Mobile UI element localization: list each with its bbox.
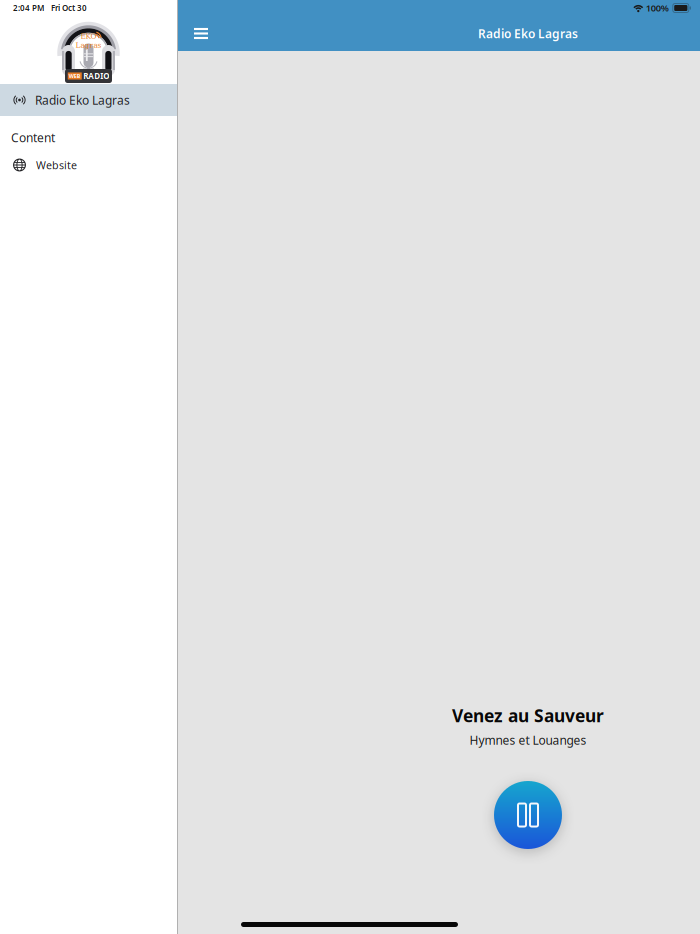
staticText: RADIO	[83, 71, 109, 81]
staticText: Content	[11, 129, 55, 145]
staticText: EKO	[80, 32, 96, 40]
staticText: 2:04 PM	[13, 3, 44, 13]
staticText: Website	[36, 158, 77, 172]
staticText: 100%	[646, 2, 669, 14]
staticText: Radio Eko Lagras	[478, 25, 578, 41]
staticText: Fri Oct 30	[51, 3, 87, 13]
staticText: Radio Eko Lagras	[35, 92, 130, 108]
button[interactable]: Content	[0, 124, 177, 151]
staticText: Hymnes et Louanges	[469, 732, 586, 748]
button[interactable]: Pause	[494, 781, 562, 849]
button[interactable]: Radio Eko Lagras	[0, 84, 177, 116]
staticText: WEB	[69, 72, 81, 80]
staticText: Venez au Sauveur	[452, 704, 604, 727]
button[interactable]: Show sidebar	[183, 16, 219, 51]
staticText: Lagras	[75, 41, 101, 49]
button[interactable]: Website	[0, 151, 177, 179]
